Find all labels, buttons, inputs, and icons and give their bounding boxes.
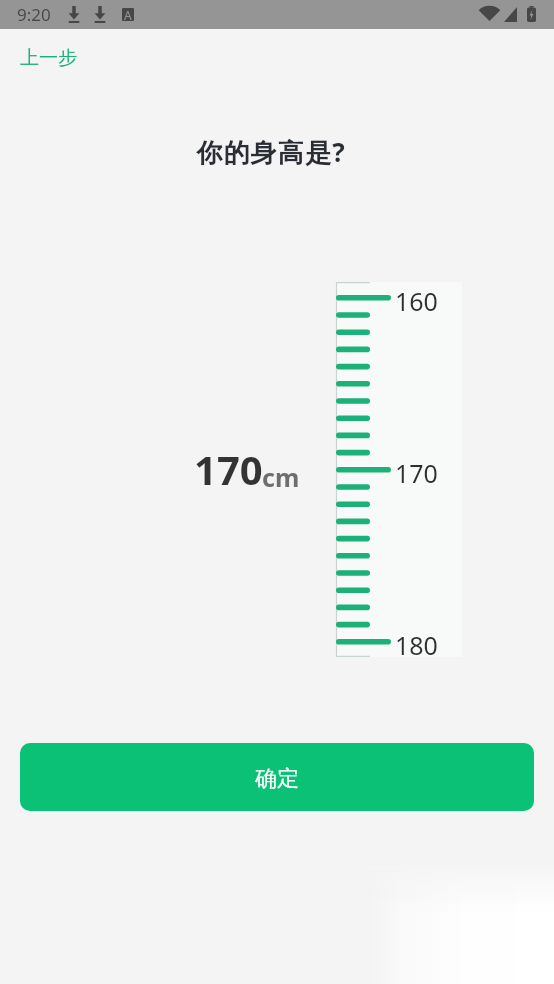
staticText: 160 [395, 284, 438, 318]
staticText: 9:20 [17, 3, 51, 26]
staticText: 170 [194, 442, 263, 496]
staticText: 180 [395, 628, 438, 662]
staticText: 你的身高是? [0, 134, 548, 170]
staticText: cm [262, 460, 300, 494]
staticText: 上一步 [20, 46, 77, 70]
button[interactable]: 确定 [20, 743, 534, 811]
staticText: 170 [395, 456, 438, 490]
staticText: 确定 [255, 765, 299, 793]
staticText: A [124, 7, 132, 20]
button[interactable]: 上一步 [14, 41, 83, 75]
